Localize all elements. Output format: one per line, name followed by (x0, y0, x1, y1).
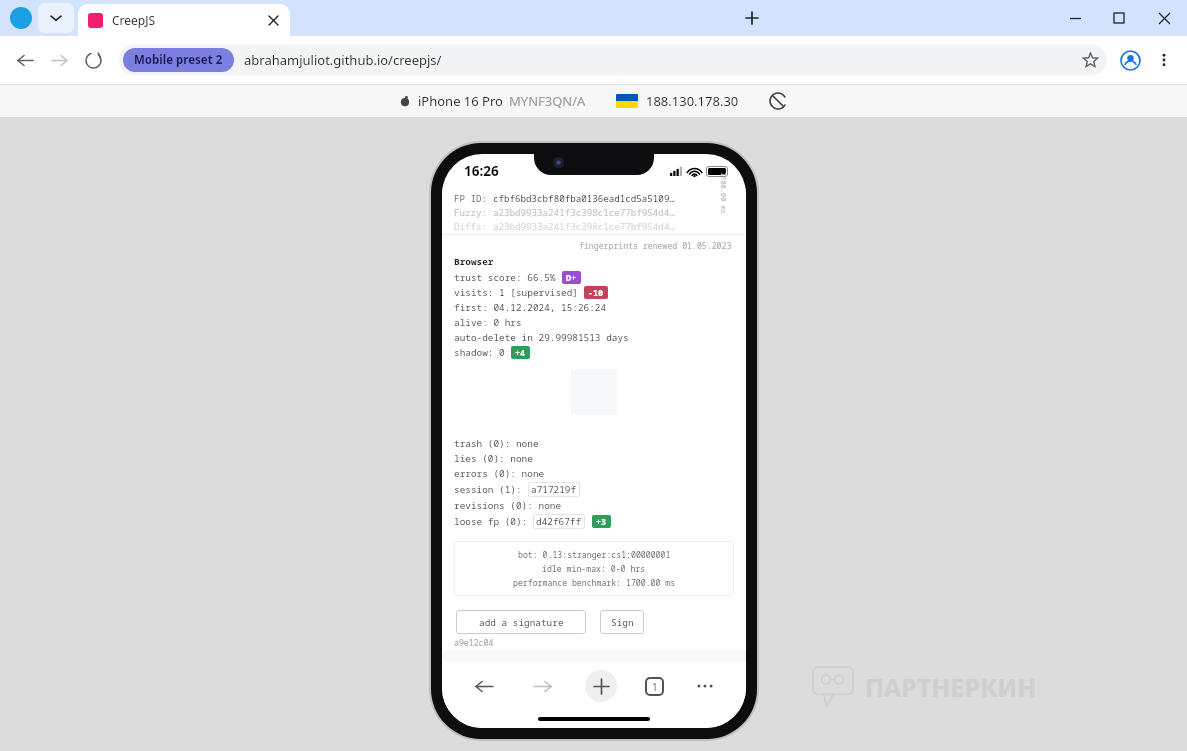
button[interactable]: Back (8, 43, 42, 77)
staticText: Fuzzy: (454, 206, 488, 219)
staticText: visits: 1 [supervised] (454, 286, 578, 299)
staticText: 188.130.178.30 (646, 92, 739, 110)
staticText: 16:26 (464, 162, 499, 180)
staticText: trust score: 66.5% (454, 271, 556, 284)
button[interactable]: Sign (600, 610, 644, 634)
staticText: a9e12c04 (454, 637, 494, 648)
staticText: alive: 0 hrs (454, 316, 522, 329)
staticText: abrahamjuliot.github.io/creepjs/ (244, 51, 442, 69)
button[interactable]: Bookmark (1073, 45, 1107, 75)
button[interactable]: Tab list (38, 3, 74, 33)
staticText: ПАРТНЕРКИН (865, 670, 1037, 704)
staticText: Mobile preset 2 (134, 52, 223, 68)
staticText: fingerprints renewed 01.05.2023 (579, 240, 732, 251)
staticText: cfbf6bd3cbf80fba0136ead1cd5a5109… (493, 192, 675, 205)
button[interactable]: Mobile preset 2 (119, 45, 1107, 75)
button[interactable]: add a signature (456, 610, 586, 634)
staticText: 1700.00 ms (718, 172, 728, 214)
staticText: add a signature (479, 616, 564, 629)
button[interactable]: Reload (76, 43, 110, 77)
staticText: revisions (0): none (454, 499, 562, 512)
button[interactable]: Rotate device (767, 90, 789, 112)
button[interactable]: Close window (1141, 1, 1187, 35)
staticText: FP ID: (454, 192, 488, 205)
button[interactable]: More options (1147, 43, 1181, 77)
staticText: errors (0): none (454, 467, 545, 480)
staticText: +4 (515, 347, 526, 358)
staticText: MYNF3QN/A (509, 92, 586, 110)
staticText: loose fp (0): (454, 515, 533, 528)
staticText: shadow: 0 (454, 346, 505, 359)
staticText: 1 (652, 680, 658, 694)
staticText: CreepJS (112, 12, 156, 28)
staticText: Browser (454, 255, 494, 268)
staticText: Sign (611, 616, 634, 629)
button[interactable]: Minimize (1053, 1, 1097, 35)
staticText: a23bd9933a241f3c398c1ce77bf954d4… (493, 220, 675, 233)
button[interactable]: Profile (1113, 43, 1147, 77)
staticText: first: 04.12.2024, 15:26:24 (454, 301, 607, 314)
staticText: idle min-max: 0-0 hrs (542, 563, 646, 574)
button[interactable]: Maximize (1097, 1, 1141, 35)
button[interactable]: Back (469, 671, 499, 701)
staticText: -10 (588, 287, 604, 298)
staticText: bot: 0.13:stranger:cs1:00000001 (518, 549, 671, 560)
button[interactable]: New tab (739, 5, 765, 31)
button[interactable]: Tabs (645, 677, 664, 696)
staticText: performance benchmark: 1700.00 ms (513, 577, 676, 588)
staticText: d42f67ff (536, 515, 582, 528)
button[interactable]: Forward (527, 671, 557, 701)
staticText: iPhone 16 Pro (418, 92, 503, 110)
button[interactable]: New tab (585, 670, 617, 702)
staticText: auto-delete in 29.99981513 days (454, 331, 629, 344)
staticText: +3 (596, 516, 607, 527)
button[interactable]: CreepJS (78, 4, 290, 36)
staticText: session (1): (454, 483, 528, 496)
button[interactable]: Close tab (262, 9, 284, 31)
button[interactable]: Browser logo (10, 7, 32, 29)
staticText: Diffs: (454, 220, 488, 233)
staticText: trash (0): none (454, 437, 539, 450)
staticText: D+ (566, 272, 577, 283)
staticText: a23bd9933a241f3c398c1ce77bf954d4… (493, 206, 675, 219)
button[interactable]: Forward (42, 43, 76, 77)
button[interactable]: More (692, 673, 718, 699)
staticText: a717219f (531, 483, 577, 496)
staticText: lies (0): none (454, 452, 533, 465)
